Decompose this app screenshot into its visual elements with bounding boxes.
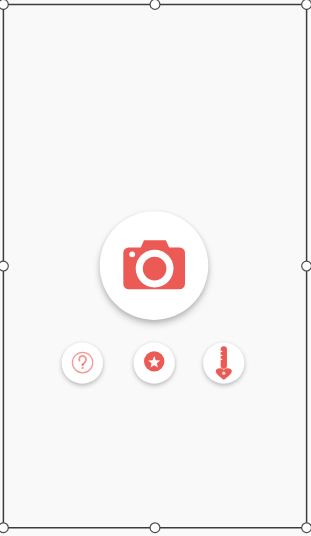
button[interactable]: Favourite: [134, 342, 175, 383]
button[interactable]: Help: [62, 342, 103, 383]
button[interactable]: Temperature: [203, 342, 244, 383]
button[interactable]: Take photo: [100, 211, 209, 320]
